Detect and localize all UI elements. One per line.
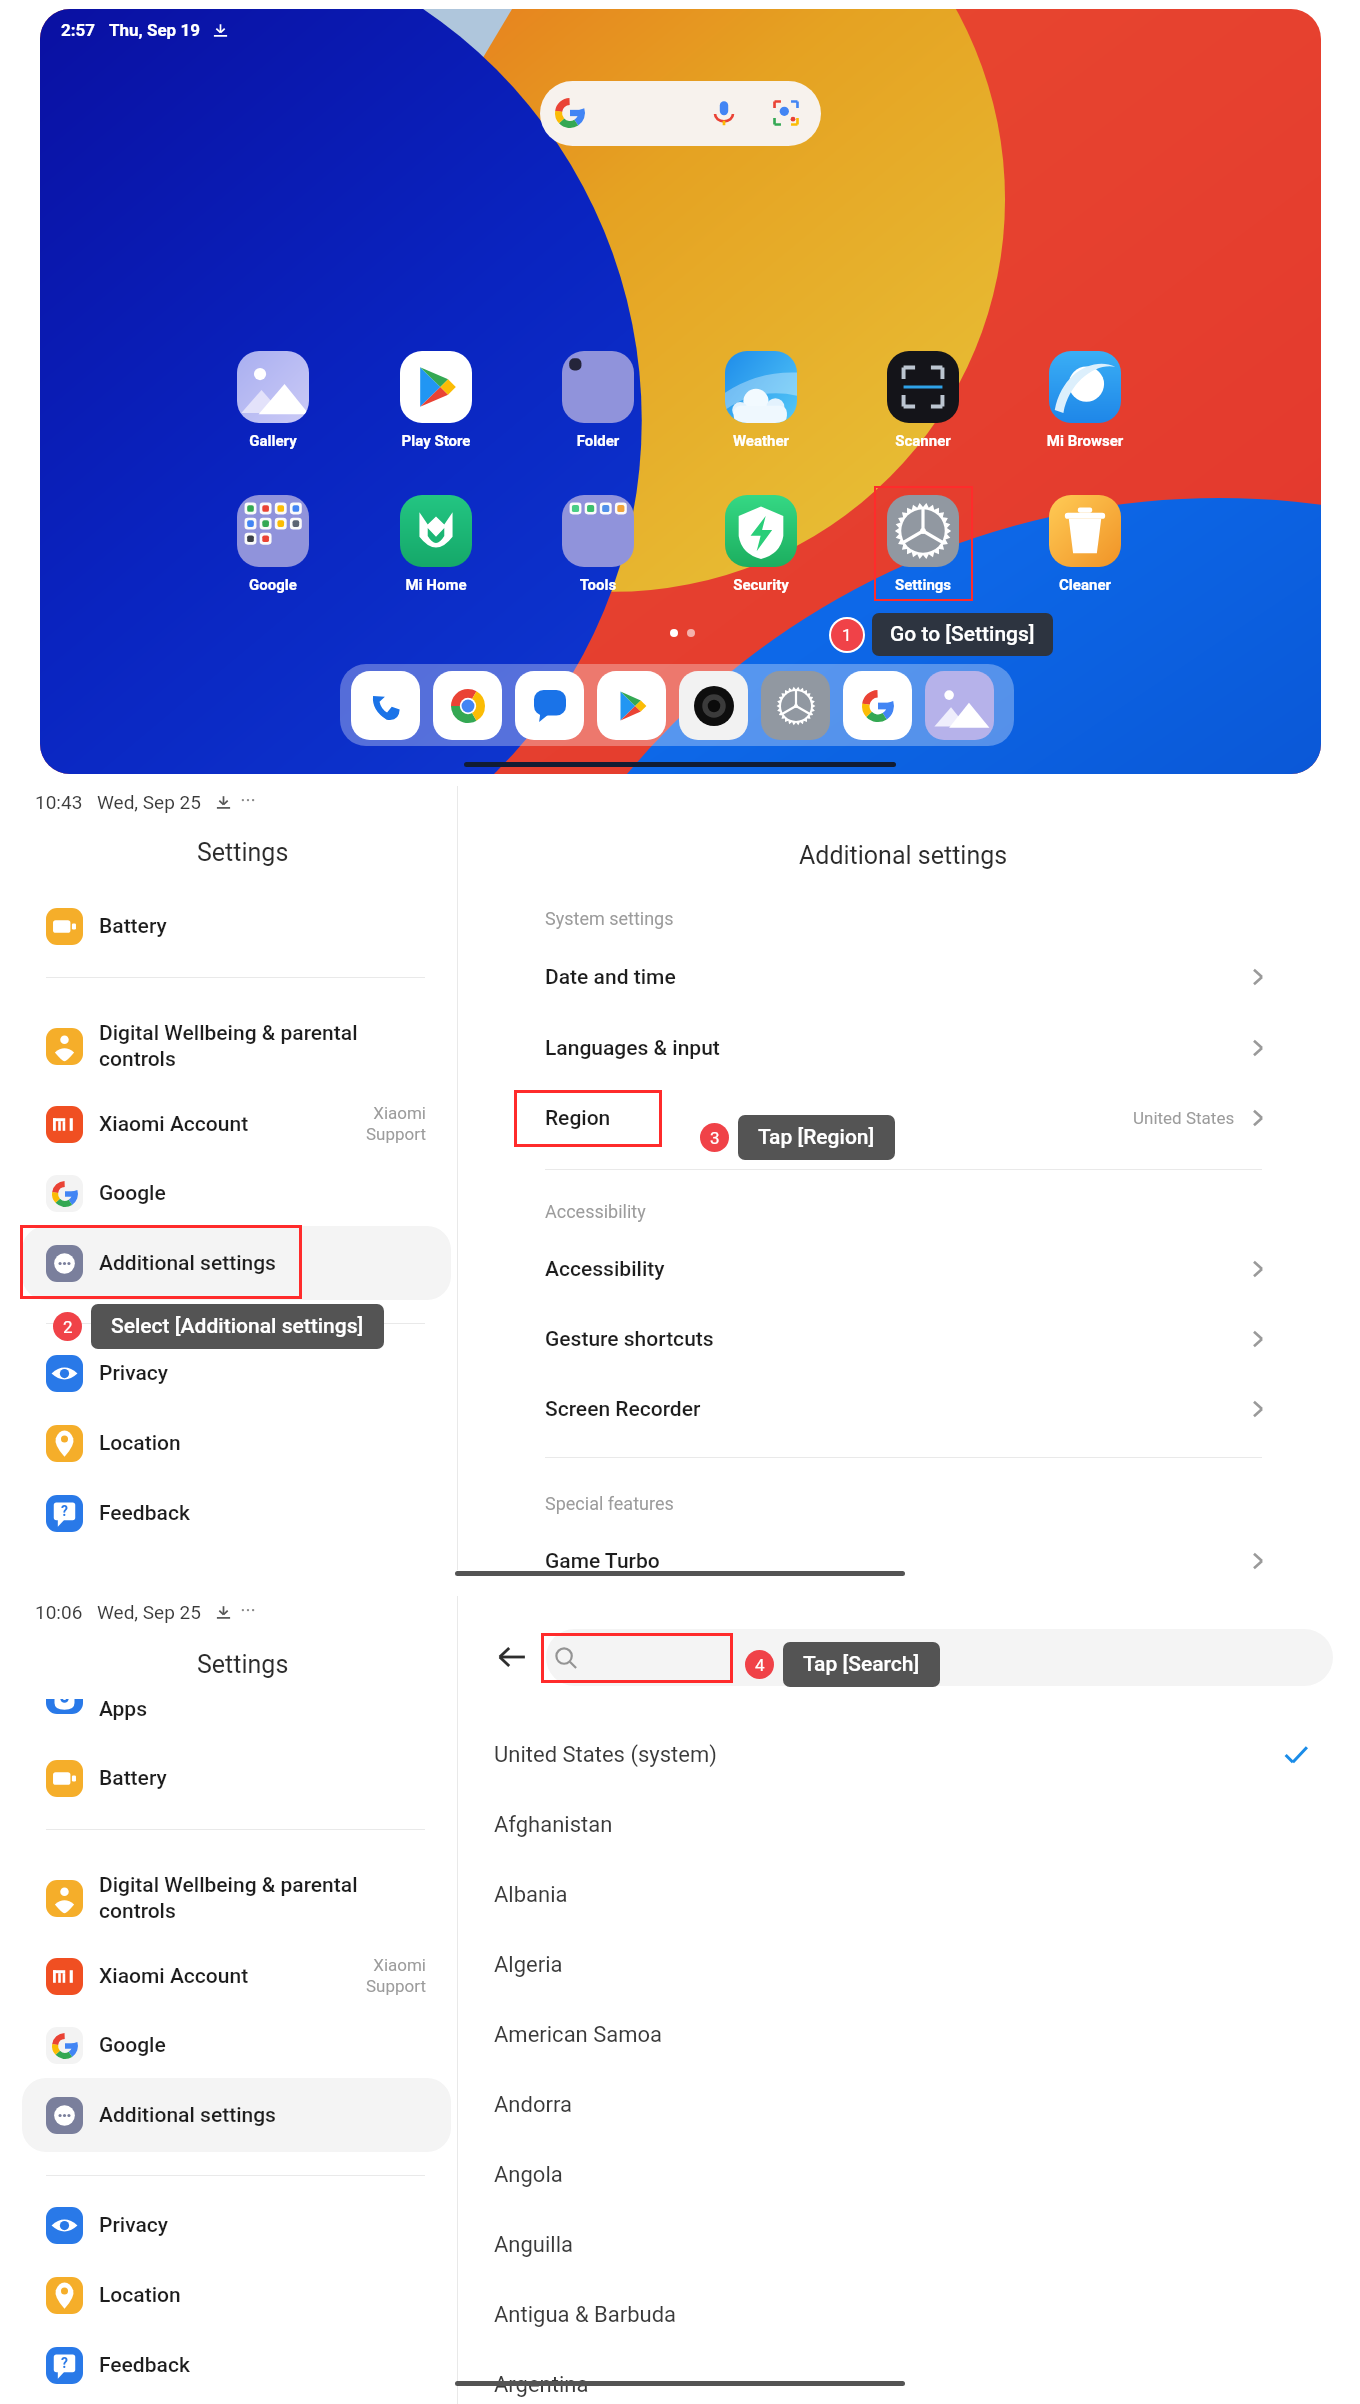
staticText: Albania (494, 1882, 568, 1908)
button[interactable]: Antigua & Barbuda (458, 2281, 1360, 2349)
staticText: Gallery (187, 432, 359, 450)
staticText: Screen Recorder (545, 1397, 701, 1422)
staticText: 1 (842, 625, 852, 645)
button[interactable]: ? (0, 2331, 457, 2399)
button[interactable]: Battery (0, 892, 457, 960)
staticText: Settings (197, 1650, 289, 1679)
staticText: Game Turbo (545, 1549, 660, 1574)
button[interactable]: Scanner (837, 351, 1009, 450)
button[interactable]: Screen Recorder (458, 1375, 1360, 1443)
button[interactable]: Albania (458, 1861, 1360, 1929)
button[interactable]: ? (0, 1479, 457, 1547)
staticText: Settings (837, 576, 1009, 594)
button[interactable]: Settings (837, 495, 1009, 594)
button[interactable]: Argentina (458, 2351, 1360, 2404)
button[interactable]: Gallery (925, 671, 994, 740)
button[interactable]: Google search (540, 81, 821, 146)
button[interactable]: Angola (458, 2141, 1360, 2209)
button[interactable]: Google (0, 1159, 457, 1227)
button[interactable]: Region (458, 1084, 1360, 1152)
button[interactable]: Weather (675, 351, 847, 450)
staticText: Feedback (99, 1501, 190, 1526)
button[interactable]: Back (490, 1635, 534, 1679)
staticText: Tools (512, 576, 684, 594)
button[interactable]: Afghanistan (458, 1791, 1360, 1859)
staticText: Tap [Search] (803, 1652, 920, 1677)
staticText: Google (187, 576, 359, 594)
button[interactable]: Location (0, 2261, 457, 2329)
button[interactable]: Phone (351, 671, 420, 740)
button[interactable]: Anguilla (458, 2211, 1360, 2279)
staticText: Play Store (350, 432, 522, 450)
button[interactable]: Xiaomi Account (0, 1942, 457, 2010)
staticText: Antigua & Barbuda (494, 2302, 677, 2328)
staticText: Google (99, 2033, 166, 2058)
staticText: Thu, Sep 19 (109, 20, 200, 40)
button[interactable]: Additional settings (22, 2078, 451, 2152)
button[interactable]: Play Store (350, 351, 522, 450)
button[interactable]: Gallery (187, 351, 359, 450)
button[interactable]: Search (546, 1629, 1333, 1686)
staticText: Digital Wellbeing & parental controls (99, 1021, 358, 1071)
staticText: Region (545, 1106, 611, 1131)
button[interactable]: Andorra (458, 2071, 1360, 2139)
button[interactable]: Google (843, 671, 912, 740)
button[interactable]: Folder (512, 351, 684, 450)
staticText: Tap [Region] (758, 1125, 875, 1150)
staticText: 2 (63, 1317, 73, 1337)
staticText: Anguilla (494, 2232, 573, 2258)
staticText: Scanner (837, 432, 1009, 450)
button[interactable]: United States (system) (458, 1721, 1360, 1789)
staticText: Algeria (494, 1952, 563, 1978)
staticText: Afghanistan (494, 1812, 613, 1838)
staticText: Security (675, 576, 847, 594)
button[interactable]: Settings (761, 671, 830, 740)
button[interactable]: Algeria (458, 1931, 1360, 1999)
button[interactable]: Chrome (433, 671, 502, 740)
staticText: American Samoa (494, 2022, 663, 2048)
staticText: Accessibility (545, 1201, 646, 1222)
button[interactable]: Xiaomi Account (0, 1090, 457, 1158)
staticText: Wed, Sep 25 (97, 1601, 201, 1623)
staticText: Battery (99, 1766, 167, 1791)
button[interactable]: Battery (0, 1744, 457, 1812)
staticText: Settings (197, 838, 289, 867)
button[interactable]: Messages (515, 671, 584, 740)
staticText: Additional settings (99, 1251, 276, 1276)
staticText: Cleaner (999, 576, 1171, 594)
staticText: Accessibility (545, 1257, 665, 1282)
button[interactable]: Tools (512, 495, 684, 594)
button[interactable]: Play Store (597, 671, 666, 740)
staticText: Battery (99, 914, 167, 939)
staticText: Location (99, 2283, 181, 2308)
button[interactable]: Gesture shortcuts (458, 1305, 1360, 1373)
button[interactable]: Date and time (458, 943, 1360, 1011)
staticText: Xiaomi Account (99, 1112, 249, 1137)
staticText: Additional settings (799, 841, 1008, 870)
staticText: Languages & input (545, 1036, 720, 1061)
button[interactable]: Google (0, 2011, 457, 2079)
button[interactable]: American Samoa (458, 2001, 1360, 2069)
staticText: United States (1133, 1108, 1235, 1128)
button[interactable]: Cleaner (999, 495, 1171, 594)
button[interactable]: Privacy (0, 1339, 457, 1407)
button[interactable]: Location (0, 1409, 457, 1477)
button[interactable]: Game Turbo (458, 1527, 1360, 1595)
button[interactable]: Apps (0, 1675, 457, 1743)
staticText: Apps (99, 1697, 147, 1722)
staticText: System settings (545, 908, 674, 929)
button[interactable]: Additional settings (22, 1226, 451, 1300)
button[interactable]: Digital Wellbeing & parental controls (0, 1858, 457, 1938)
button[interactable]: Languages & input (458, 1014, 1360, 1082)
staticText: Additional settings (99, 2103, 276, 2128)
button[interactable]: Google (187, 495, 359, 594)
button[interactable]: Camera (679, 671, 748, 740)
staticText: 3 (710, 1128, 720, 1148)
staticText: Weather (675, 432, 847, 450)
button[interactable]: Digital Wellbeing & parental controls (0, 1006, 457, 1086)
button[interactable]: Mi Home (350, 495, 522, 594)
button[interactable]: Accessibility (458, 1235, 1360, 1303)
button[interactable]: Security (675, 495, 847, 594)
button[interactable]: Privacy (0, 2191, 457, 2259)
button[interactable]: Mi Browser (999, 351, 1171, 450)
